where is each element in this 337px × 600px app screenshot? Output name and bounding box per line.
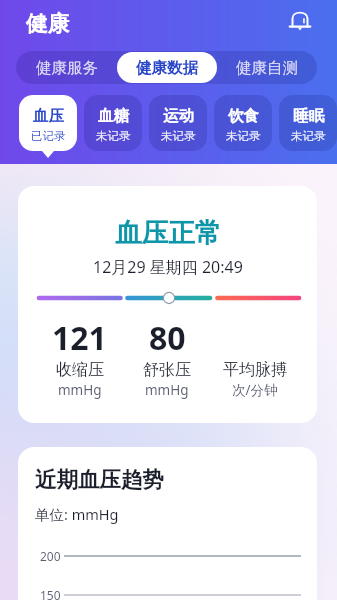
staticText: 12月29 星期四 20:49 [93, 256, 243, 278]
staticText: 未记录 [226, 129, 261, 143]
button[interactable]: 健康服务 [16, 52, 117, 83]
staticText: 80 [149, 316, 186, 350]
staticText: 已记录 [31, 129, 66, 143]
staticText: 健康数据 [136, 58, 198, 78]
staticText: 饮食 [228, 106, 259, 126]
staticText: 收缩压 [56, 360, 104, 380]
button[interactable]: 血压 [19, 95, 77, 151]
staticText: 未记录 [96, 129, 131, 143]
button[interactable]: 运动 [149, 95, 207, 151]
button[interactable]: 血糖 [84, 95, 142, 151]
staticText: 未记录 [161, 129, 196, 143]
staticText: 单位: mmHg [35, 504, 119, 524]
button[interactable]: 健康数据 [117, 52, 217, 83]
staticText: 血压 [33, 106, 64, 126]
staticText: mmHg [145, 381, 189, 399]
button[interactable]: 睡眠 [279, 95, 337, 151]
staticText: mmHg [58, 381, 102, 399]
button[interactable]: 健康自测 [217, 52, 317, 83]
staticText: 健康 [26, 10, 69, 37]
staticText: 血糖 [98, 106, 129, 126]
staticText: 次/分钟 [232, 381, 278, 399]
staticText: 舒张压 [143, 360, 191, 380]
staticText: 200 [40, 548, 64, 564]
staticText: 睡眠 [293, 106, 324, 126]
staticText: 血压正常 [115, 216, 221, 249]
staticText: 未记录 [291, 129, 326, 143]
button[interactable]: Notifications [286, 6, 314, 34]
staticText: 平均脉搏 [223, 360, 287, 380]
staticText: 健康服务 [36, 58, 98, 78]
staticText: 150 [40, 587, 64, 600]
staticText: 121 [52, 316, 107, 350]
staticText: 健康自测 [236, 58, 298, 78]
button[interactable]: 饮食 [214, 95, 272, 151]
staticText: 近期血压趋势 [35, 466, 164, 493]
staticText: 运动 [163, 106, 194, 126]
